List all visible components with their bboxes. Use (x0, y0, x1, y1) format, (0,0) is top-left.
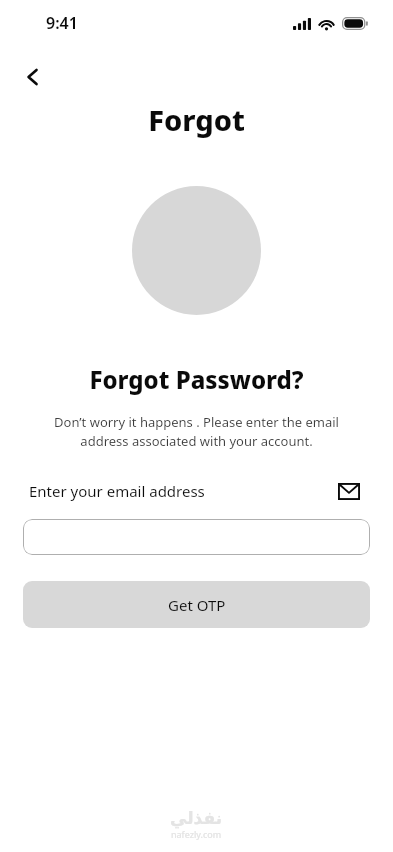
staticText: 9:41 (46, 12, 78, 34)
staticText: nafezly.com (171, 828, 222, 840)
staticText: Forgot (0, 100, 393, 139)
staticText: Get OTP (168, 595, 226, 615)
button[interactable]: Email (336, 478, 362, 504)
button[interactable]: Back (12, 56, 54, 98)
staticText: Don’t worry it happens . Please enter th… (40, 413, 353, 450)
staticText: Forgot Password? (0, 363, 393, 396)
button[interactable] (23, 519, 370, 555)
staticText: Enter your email address (29, 481, 205, 501)
staticText: نفذلي (170, 808, 223, 828)
button[interactable]: Get OTP (23, 581, 370, 628)
